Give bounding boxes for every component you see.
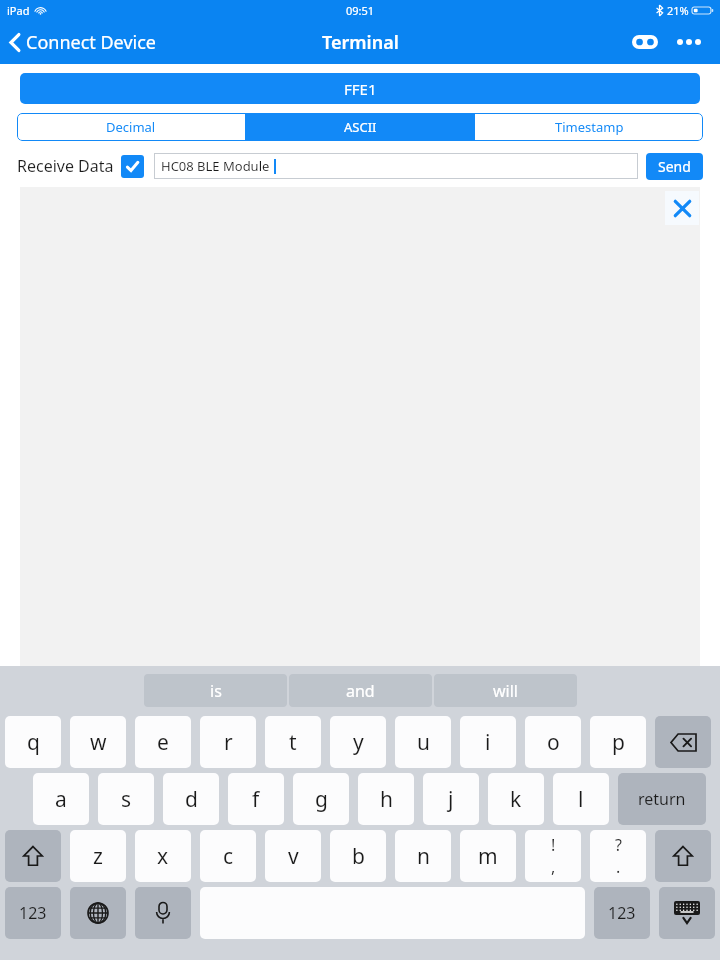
staticText: p — [612, 728, 625, 757]
staticText: . — [616, 856, 621, 878]
staticText: r — [224, 728, 233, 757]
staticText: j — [448, 785, 454, 814]
staticText: a — [55, 785, 67, 814]
staticText: t — [289, 728, 297, 757]
button[interactable]: f — [228, 773, 284, 825]
button[interactable]: Change keyboard language — [70, 887, 126, 939]
staticText: HC08 BLE Module — [161, 157, 270, 175]
button[interactable]: Timestamp — [475, 113, 703, 141]
staticText: Decimal — [106, 118, 156, 136]
staticText: m — [478, 842, 498, 871]
staticText: and — [346, 680, 375, 702]
staticText: Timestamp — [555, 118, 624, 136]
button[interactable]: Shift — [5, 830, 61, 882]
button[interactable]: c — [200, 830, 256, 882]
button[interactable]: h — [358, 773, 414, 825]
staticText: Send — [658, 157, 691, 176]
button[interactable]: p — [590, 716, 646, 768]
button[interactable]: HC08 BLE Module — [154, 153, 638, 179]
staticText: , — [551, 856, 556, 878]
staticText: 09:51 — [346, 3, 375, 18]
button[interactable]: Glasses view — [626, 23, 664, 61]
staticText: e — [157, 728, 169, 757]
staticText: q — [27, 728, 40, 757]
button[interactable]: Shift — [655, 830, 711, 882]
staticText: n — [417, 842, 430, 871]
staticText: will — [493, 680, 518, 702]
button[interactable]: will — [434, 674, 577, 707]
button[interactable]: o — [525, 716, 581, 768]
button[interactable]: u — [395, 716, 451, 768]
button[interactable]: j — [423, 773, 479, 825]
staticText: u — [417, 728, 430, 757]
button[interactable]: g — [293, 773, 349, 825]
button[interactable]: v — [265, 830, 321, 882]
staticText: 21% — [667, 3, 689, 18]
staticText: v — [288, 842, 299, 871]
staticText: Receive Data — [17, 155, 114, 177]
button[interactable]: Receive Data enabled — [121, 155, 144, 178]
button[interactable]: k — [488, 773, 544, 825]
button[interactable]: m — [460, 830, 516, 882]
staticText: 123 — [19, 902, 47, 924]
button[interactable]: n — [395, 830, 451, 882]
button[interactable]: Hide keyboard — [659, 887, 715, 939]
button[interactable]: return — [618, 773, 706, 825]
button[interactable]: a — [33, 773, 89, 825]
staticText: k — [510, 785, 522, 814]
staticText: l — [578, 785, 584, 814]
button[interactable]: q — [5, 716, 61, 768]
staticText: 123 — [608, 902, 636, 924]
button[interactable]: Connect Device — [0, 24, 166, 61]
staticText: g — [315, 785, 328, 814]
staticText: z — [93, 842, 103, 871]
staticText: d — [185, 785, 198, 814]
staticText: Terminal — [322, 30, 399, 55]
staticText: s — [121, 785, 132, 814]
button[interactable]: ! — [525, 830, 581, 882]
staticText: y — [353, 728, 364, 757]
button[interactable]: ASCII — [246, 113, 474, 141]
button[interactable]: and — [289, 674, 432, 707]
button[interactable]: s — [98, 773, 154, 825]
button[interactable]: b — [330, 830, 386, 882]
button[interactable]: Backspace — [655, 716, 711, 768]
button[interactable]: e — [135, 716, 191, 768]
staticText: ! — [551, 834, 556, 856]
button[interactable]: z — [70, 830, 126, 882]
button[interactable]: x — [135, 830, 191, 882]
button[interactable]: w — [70, 716, 126, 768]
staticText: is — [210, 680, 222, 702]
button[interactable]: FFE1 — [20, 73, 700, 104]
staticText: i — [485, 728, 491, 757]
button[interactable]: d — [163, 773, 219, 825]
button[interactable]: r — [200, 716, 256, 768]
button[interactable]: ? — [590, 830, 646, 882]
button[interactable]: Clear log — [665, 191, 699, 225]
staticText: ? — [615, 834, 622, 856]
button[interactable]: t — [265, 716, 321, 768]
staticText: f — [252, 785, 260, 814]
staticText: o — [547, 728, 560, 757]
button[interactable]: Dictation — [135, 887, 191, 939]
staticText: Connect Device — [26, 30, 156, 55]
staticText: FFE1 — [344, 79, 377, 99]
staticText: return — [638, 788, 686, 810]
staticText: c — [223, 842, 234, 871]
staticText: x — [157, 842, 169, 871]
button[interactable]: Decimal — [17, 113, 245, 141]
staticText: iPad — [7, 3, 30, 18]
button[interactable]: is — [144, 674, 287, 707]
button[interactable]: More options — [670, 23, 708, 61]
button[interactable]: i — [460, 716, 516, 768]
staticText: ASCII — [344, 118, 377, 136]
button[interactable]: l — [553, 773, 609, 825]
button[interactable]: 123 — [5, 887, 61, 939]
staticText: h — [380, 785, 393, 814]
button[interactable]: 123 — [594, 887, 650, 939]
staticText: w — [90, 728, 107, 757]
button[interactable]: Send — [646, 153, 703, 180]
button[interactable]: y — [330, 716, 386, 768]
staticText: b — [352, 842, 365, 871]
